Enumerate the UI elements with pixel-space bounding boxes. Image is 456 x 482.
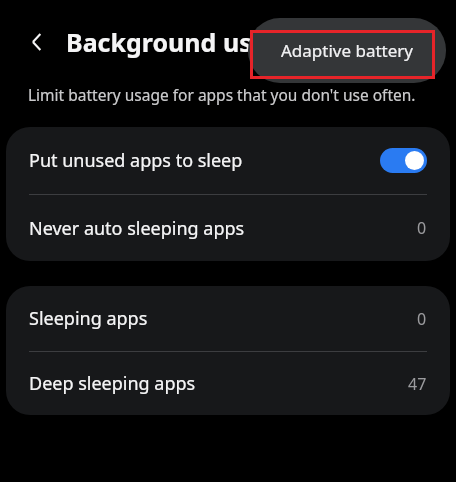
staticText: Limit battery usage for apps that you do… — [28, 84, 416, 105]
staticText: 0 — [417, 308, 427, 330]
staticText: Adaptive battery — [281, 39, 414, 62]
staticText: Put unused apps to sleep — [29, 148, 380, 173]
staticText: Never auto sleeping apps — [29, 216, 417, 241]
staticText: Deep sleeping apps — [29, 371, 408, 396]
button[interactable]: Back — [15, 20, 59, 64]
button[interactable]: Never auto sleeping apps — [6, 195, 450, 261]
staticText: 47 — [408, 373, 427, 395]
button[interactable]: Put unused apps to sleep toggle — [380, 148, 427, 173]
button[interactable]: Put unused apps to sleep — [6, 127, 450, 194]
button[interactable]: Deep sleeping apps — [6, 352, 450, 415]
button[interactable]: Sleeping apps — [6, 286, 450, 351]
staticText: 0 — [417, 217, 427, 239]
button[interactable]: Adaptive battery — [248, 18, 446, 83]
staticText: Sleeping apps — [29, 306, 417, 331]
staticText: Background usage limits — [66, 25, 375, 59]
